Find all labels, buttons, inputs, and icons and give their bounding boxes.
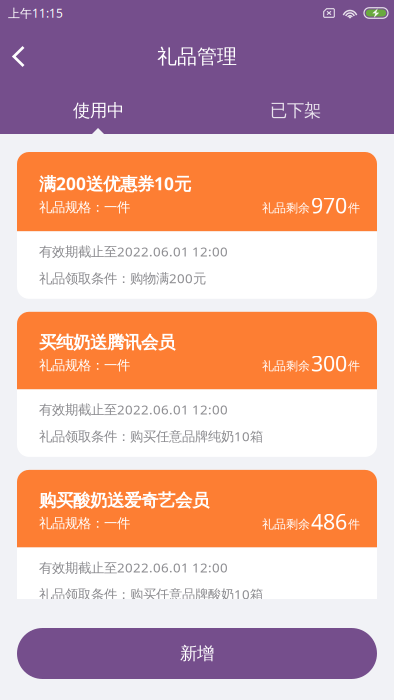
staticText: 件 — [348, 359, 360, 373]
staticText: 礼品剩余 — [262, 359, 310, 373]
staticText: 有效期截止至2022.06.01 12:00 — [39, 559, 228, 576]
staticText: 礼品规格：一件 — [39, 199, 130, 215]
staticText: 件 — [348, 517, 360, 531]
staticText: 购买酸奶送爱奇艺会员 — [39, 490, 209, 511]
staticText: 已下架 — [270, 100, 321, 121]
staticText: 礼品规格：一件 — [39, 515, 130, 532]
staticText: 件 — [348, 201, 360, 215]
staticText: 满200送优惠券10元 — [39, 172, 191, 195]
button[interactable]: 买纯奶送腾讯会员 — [17, 312, 377, 457]
staticText: 486 — [311, 507, 347, 535]
staticText: 有效期截止至2022.06.01 12:00 — [39, 242, 228, 260]
staticText: 礼品领取条件：购物满200元 — [39, 269, 206, 287]
staticText: 上午11:15 — [8, 5, 63, 21]
staticText: 礼品领取条件：购买任意品牌纯奶10箱 — [39, 427, 263, 445]
button[interactable]: 返回 — [0, 35, 39, 77]
button[interactable]: 已下架 — [197, 87, 394, 134]
button[interactable]: 满200送优惠券10元 — [17, 152, 377, 299]
button[interactable]: 购买酸奶送爱奇艺会员 — [17, 470, 377, 615]
staticText: 礼品领取条件：购买任意品牌酸奶10箱 — [39, 585, 263, 603]
staticText: 买纯奶送腾讯会员 — [39, 332, 175, 353]
staticText: 礼品管理 — [157, 44, 237, 69]
staticText: 礼品剩余 — [262, 201, 310, 215]
staticText: 礼品剩余 — [262, 517, 310, 531]
button[interactable]: 使用中 — [0, 87, 197, 134]
staticText: 300 — [311, 349, 347, 377]
button[interactable]: 新增 — [17, 628, 377, 679]
staticText: 礼品规格：一件 — [39, 357, 130, 373]
staticText: 新增 — [180, 643, 214, 664]
staticText: 使用中 — [73, 100, 124, 121]
staticText: 970 — [311, 191, 347, 219]
staticText: 有效期截止至2022.06.01 12:00 — [39, 400, 228, 418]
